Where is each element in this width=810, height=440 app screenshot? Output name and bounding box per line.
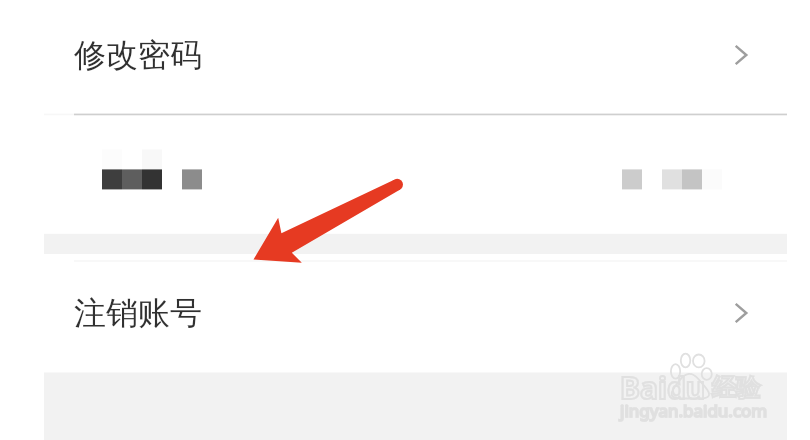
staticText: 注销账号 — [74, 293, 202, 333]
staticText: Baidu — [620, 367, 706, 408]
staticText: 经验 — [712, 373, 760, 403]
staticText: 修改密码 — [74, 35, 202, 75]
button[interactable]: 修改密码 — [0, 0, 810, 114]
button[interactable]: Account info — [0, 115, 810, 234]
staticText: jingyan.baidu.com — [620, 399, 768, 422]
button[interactable]: 注销账号 — [0, 254, 810, 372]
